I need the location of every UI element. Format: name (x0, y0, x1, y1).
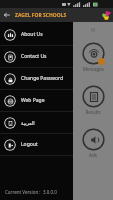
staticText: Web Page (21, 97, 45, 104)
button[interactable]: Logout (0, 134, 73, 155)
staticText: Change Password (21, 75, 63, 82)
staticText: العربية (21, 120, 35, 126)
staticText: Logout (21, 141, 38, 148)
staticText: Hi (91, 27, 96, 33)
button[interactable]: Back (0, 8, 14, 22)
staticText: Results (85, 109, 101, 115)
staticText: Messages (83, 66, 104, 72)
button[interactable]: Ads (73, 126, 113, 160)
staticText: About Us (21, 31, 43, 38)
staticText: Contact Us (21, 53, 47, 60)
button[interactable]: Results (73, 83, 113, 117)
button[interactable]: Contact Us (0, 46, 73, 67)
staticText: Ads (89, 152, 97, 158)
button[interactable]: App logo (99, 8, 113, 22)
button[interactable]: Messages (73, 40, 113, 74)
staticText: ZAGEL FOR SCHOOLS (15, 12, 67, 19)
button[interactable]: Web Page (0, 90, 73, 111)
button[interactable]: About Us (0, 24, 73, 45)
staticText: Current Version : 3.0.0.0 (5, 189, 57, 195)
button[interactable]: Change Password (0, 68, 73, 89)
button[interactable]: العربية (0, 112, 73, 133)
